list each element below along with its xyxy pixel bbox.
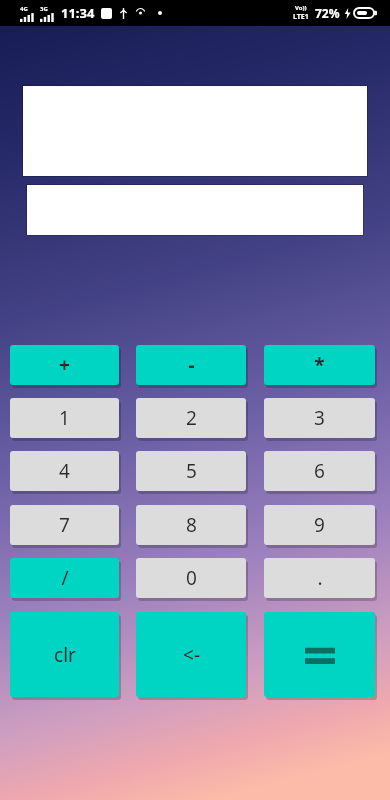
staticText: . — [317, 565, 323, 591]
button[interactable]: 8 — [136, 505, 246, 545]
staticText: - — [188, 352, 195, 378]
button[interactable]: <- — [136, 612, 246, 697]
button[interactable]: 6 — [264, 451, 375, 491]
button[interactable]: - — [136, 345, 246, 385]
staticText: + — [59, 352, 70, 378]
staticText: 2 — [186, 405, 197, 431]
button[interactable]: + — [10, 345, 119, 385]
staticText: * — [314, 352, 325, 378]
staticText: <- — [183, 642, 200, 668]
button[interactable]: 7 — [10, 505, 119, 545]
button[interactable]: * — [264, 345, 375, 385]
button[interactable]: . — [264, 558, 375, 598]
staticText: 72% — [315, 5, 340, 21]
staticText: clr — [54, 642, 76, 668]
button[interactable]: 0 — [136, 558, 246, 598]
button[interactable]: / — [10, 558, 119, 598]
staticText: 9 — [314, 512, 325, 538]
button[interactable]: clr — [10, 612, 119, 697]
button[interactable]: 3 — [264, 398, 375, 438]
staticText: / — [61, 565, 69, 591]
staticText: 1 — [59, 405, 70, 431]
staticText: 11:34 — [61, 4, 95, 22]
staticText: 8 — [186, 512, 197, 538]
button[interactable]: 5 — [136, 451, 246, 491]
staticText: 7 — [59, 512, 70, 538]
staticText: Vo)) — [295, 4, 307, 12]
button[interactable]: 1 — [10, 398, 119, 438]
staticText: 4G — [20, 5, 28, 13]
button[interactable] — [264, 612, 375, 697]
button[interactable]: 2 — [136, 398, 246, 438]
staticText: LTE1 — [293, 12, 309, 22]
staticText: 4 — [59, 458, 70, 484]
staticText: 3G — [40, 5, 48, 13]
button[interactable]: 4 — [10, 451, 119, 491]
staticText: 6 — [314, 458, 325, 484]
button[interactable]: 9 — [264, 505, 375, 545]
staticText: 0 — [186, 565, 197, 591]
staticText: 3 — [314, 405, 325, 431]
staticText: 5 — [186, 458, 197, 484]
